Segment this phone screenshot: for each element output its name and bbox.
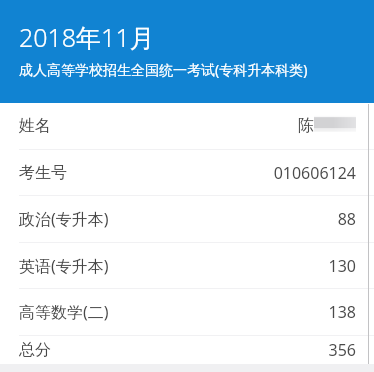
button[interactable]: 英语(专升本) [0,243,374,288]
staticText: 总分 [19,340,51,360]
button[interactable]: 考生号 [0,150,374,195]
staticText: 356 [328,339,356,361]
staticText: 考生号 [19,163,67,183]
button[interactable]: 政治(专升本) [0,196,374,242]
staticText: 成人高等学校招生全国统一考试(专科升本科类) [19,60,308,79]
staticText: 陈 [298,116,314,136]
staticText: 政治(专升本) [19,208,109,230]
staticText: 130 [328,255,356,277]
button[interactable]: 高等数学(二) [0,289,374,335]
button[interactable]: 总分 [0,336,374,364]
staticText: 2018年11月 [19,20,155,54]
staticText: 英语(专升本) [19,255,109,277]
button[interactable]: 姓名 [0,103,374,149]
staticText: 高等数学(二) [19,301,109,323]
staticText: 138 [328,301,356,323]
staticText: 88 [337,208,356,230]
staticText: 010606124 [273,162,356,184]
staticText: 姓名 [19,116,51,136]
